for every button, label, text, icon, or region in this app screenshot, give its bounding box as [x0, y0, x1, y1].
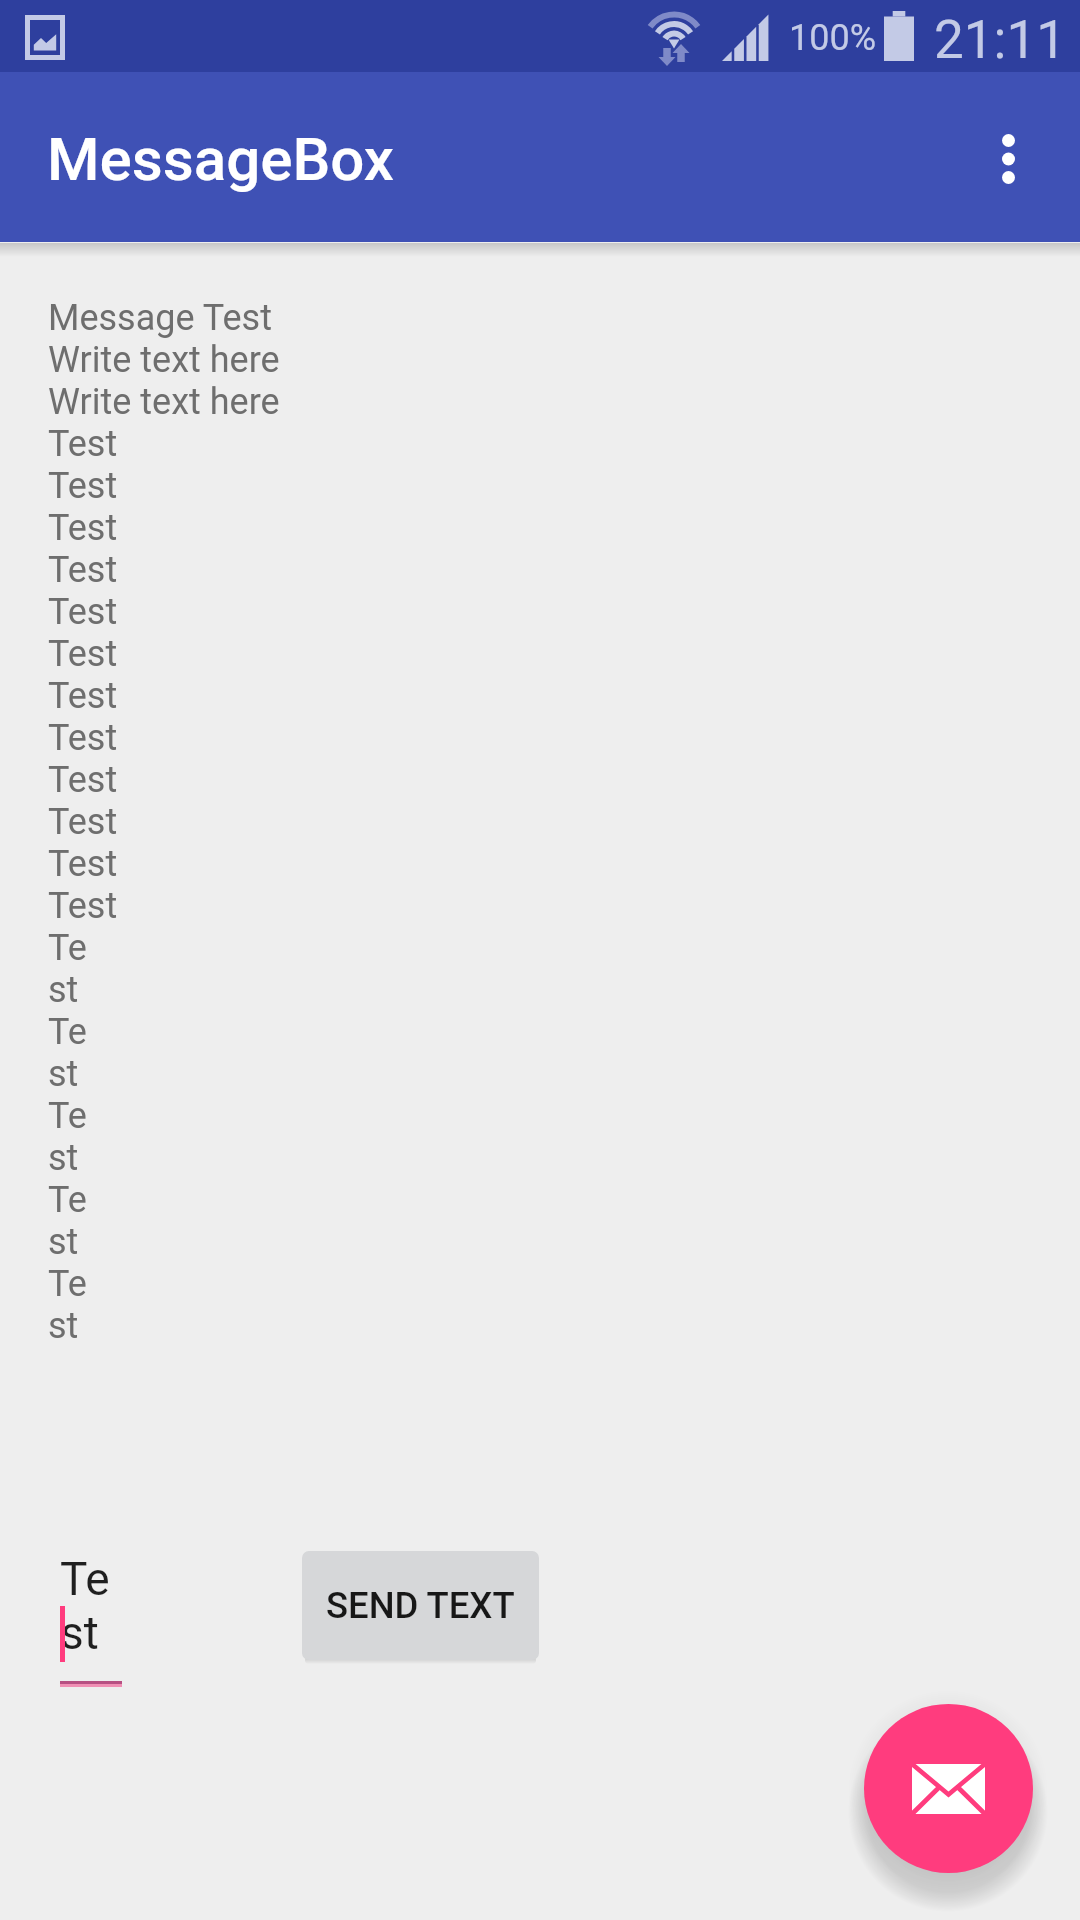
- button[interactable]: SEND TEXT: [302, 1551, 539, 1660]
- staticText: Te: [48, 1263, 87, 1305]
- staticText: Te: [48, 1011, 87, 1053]
- staticText: Test: [48, 801, 118, 843]
- staticText: st: [48, 1053, 79, 1095]
- staticText: Test: [48, 465, 118, 507]
- staticText: Write text here: [48, 381, 280, 423]
- staticText: Test: [48, 759, 118, 801]
- button[interactable]: New message: [864, 1704, 1033, 1873]
- staticText: st: [60, 1606, 99, 1660]
- staticText: 100%: [789, 17, 877, 59]
- staticText: st: [48, 1137, 79, 1179]
- staticText: Test: [48, 549, 118, 591]
- staticText: MessageBox: [47, 124, 395, 194]
- staticText: SEND TEXT: [326, 1584, 515, 1627]
- staticText: Write text here: [48, 339, 280, 381]
- staticText: Te: [48, 927, 87, 969]
- staticText: st: [48, 1305, 79, 1347]
- staticText: st: [48, 969, 79, 1011]
- staticText: Test: [48, 675, 118, 717]
- staticText: Test: [48, 717, 118, 759]
- staticText: Test: [48, 885, 118, 927]
- staticText: 21:11: [934, 9, 1066, 71]
- staticText: Te: [48, 1095, 87, 1137]
- staticText: Test: [48, 423, 118, 465]
- staticText: Te: [48, 1179, 87, 1221]
- staticText: Test: [48, 633, 118, 675]
- staticText: st: [48, 1221, 79, 1263]
- staticText: Message Test: [48, 297, 272, 339]
- staticText: Test: [48, 507, 118, 549]
- staticText: Te: [60, 1552, 110, 1606]
- staticText: Test: [48, 591, 118, 633]
- button[interactable]: Message input field: [60, 1552, 122, 1687]
- button[interactable]: More options: [958, 109, 1058, 209]
- staticText: Test: [48, 843, 118, 885]
